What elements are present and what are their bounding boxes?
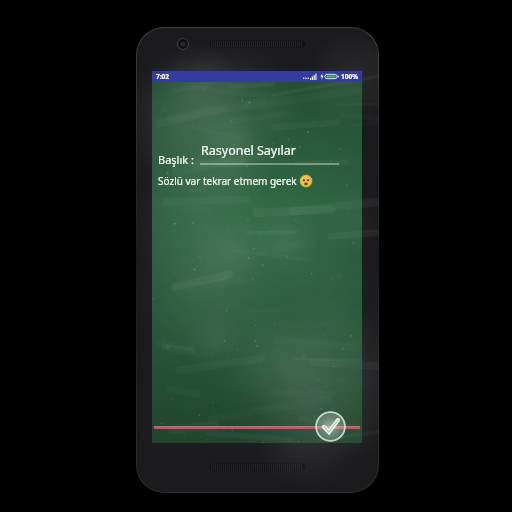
button[interactable]: Sözlü var tekrar etmem gerek <box>158 174 312 188</box>
button[interactable]: Kaydet <box>315 411 346 442</box>
staticText: 7:02 <box>156 72 169 81</box>
staticText: Rasyonel Sayılar <box>201 142 296 159</box>
button[interactable]: Rasyonel Sayılar <box>200 142 339 165</box>
staticText: Başlık : <box>158 152 194 167</box>
staticText: Sözlü var tekrar etmem gerek <box>158 174 300 188</box>
staticText: 100% <box>341 72 359 81</box>
